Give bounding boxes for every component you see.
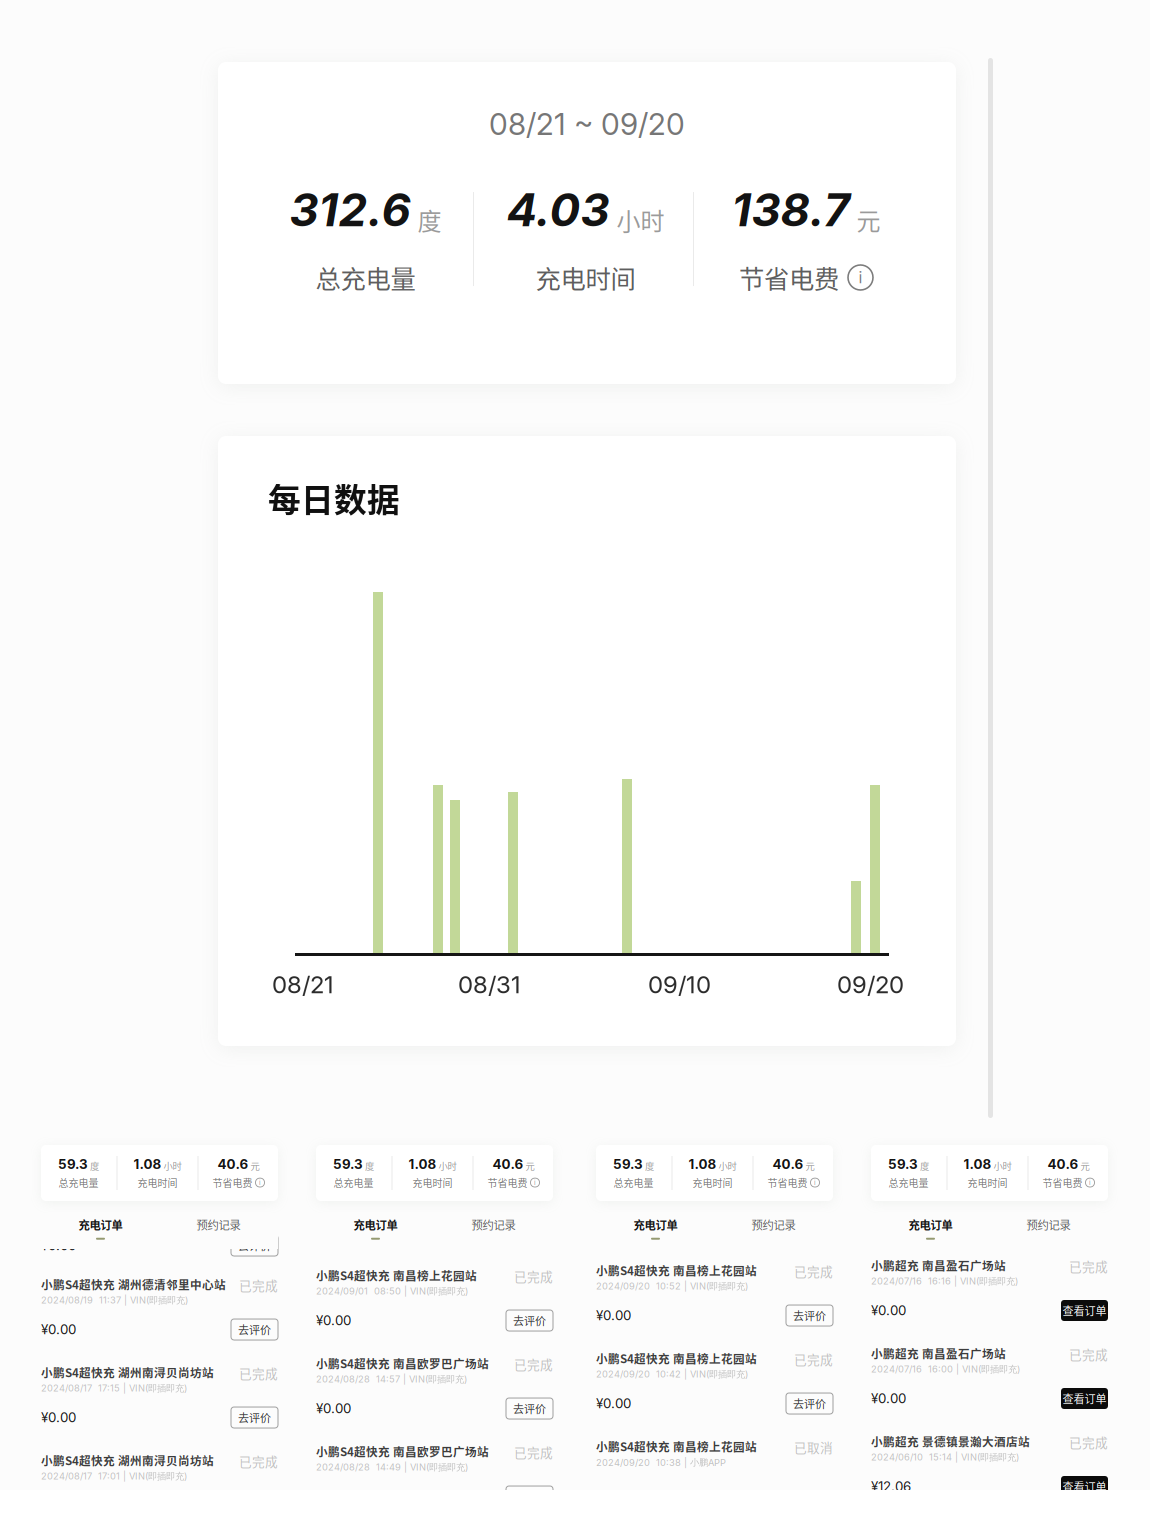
- button[interactable]: 小鹏超充 南昌盈石广场站: [871, 1257, 1108, 1321]
- staticText: 查看订单: [1062, 1302, 1106, 1318]
- button[interactable]: 小鹏S4超快充 湖州德清邻里中心站: [41, 1276, 278, 1340]
- button[interactable]: 去评价: [231, 1235, 278, 1256]
- button[interactable]: 预约记录: [434, 1215, 552, 1241]
- staticText: 已完成: [239, 1276, 278, 1294]
- staticText: 预约记录: [196, 1216, 240, 1233]
- button[interactable]: 去评价: [786, 1305, 833, 1326]
- staticText: ¥12.06: [871, 1478, 911, 1494]
- staticText: 2024/09/20 10:42 | VIN(即插即充): [596, 1368, 748, 1380]
- button[interactable]: 小鹏S4超快充 南昌欧罗巴广场站: [316, 1355, 553, 1419]
- staticText: 59.3: [888, 1156, 918, 1172]
- staticText: ¥0.00: [596, 1307, 631, 1323]
- button[interactable]: 小鹏S4超快充 南昌榜上花园站: [596, 1350, 833, 1414]
- staticText: 总充电量: [888, 1175, 928, 1190]
- staticText: 去评价: [238, 1321, 271, 1337]
- button[interactable]: 去评价: [786, 1393, 833, 1414]
- staticText: 元: [525, 1159, 534, 1172]
- staticText: ¥0.00: [41, 1237, 76, 1253]
- staticText: 去评价: [793, 1307, 826, 1323]
- button[interactable]: 充电订单: [316, 1215, 434, 1241]
- staticText: 小鹏S4超快充 湖州南浔贝尚坊站: [41, 1452, 214, 1468]
- staticText: 138.7: [731, 182, 849, 237]
- staticText: ¥0.00: [316, 1400, 351, 1416]
- button[interactable]: 查看订单: [1061, 1476, 1108, 1497]
- staticText: 小鹏S4超快充 南昌榜上花园站: [596, 1262, 757, 1278]
- staticText: 1.08: [133, 1156, 161, 1172]
- staticText: 小鹏S4超快充 湖州德清邻里中心站: [41, 1276, 226, 1292]
- staticText: 充电订单: [78, 1216, 122, 1233]
- staticText: i: [259, 1178, 261, 1187]
- staticText: i: [1089, 1178, 1091, 1187]
- staticText: 去评价: [513, 1400, 546, 1416]
- button[interactable]: 预约记录: [989, 1215, 1107, 1241]
- staticText: ¥0.00: [41, 1321, 76, 1337]
- button[interactable]: 去评价: [506, 1486, 553, 1507]
- staticText: 08/21: [272, 970, 334, 999]
- staticText: ¥0.00: [596, 1395, 631, 1411]
- button[interactable]: 预约记录: [159, 1215, 277, 1241]
- staticText: 2024/09/20 10:52 | VIN(即插即充): [596, 1280, 748, 1292]
- button[interactable]: 小鹏S4超快充 湖州南浔贝尚坊站: [41, 1452, 278, 1516]
- staticText: 元: [805, 1159, 814, 1172]
- button[interactable]: 去评价: [231, 1407, 278, 1428]
- button[interactable]: 充电订单: [596, 1215, 714, 1241]
- staticText: 节省电费: [212, 1175, 252, 1190]
- staticText: 度: [920, 1159, 929, 1172]
- staticText: 元: [856, 202, 880, 237]
- staticText: 充电时间: [535, 259, 635, 296]
- staticText: 节省电费: [739, 259, 839, 296]
- staticText: 2024/07/16 16:16 | VIN(即插即充): [871, 1275, 1018, 1287]
- staticText: 小鹏S4超快充 南昌榜上花园站: [596, 1350, 757, 1366]
- staticText: 小鹏S4超快充 南昌榜上花园站: [316, 1267, 477, 1283]
- button[interactable]: 小鹏S4超快充 南昌欧罗巴广场站: [316, 1443, 553, 1507]
- staticText: 59.3: [58, 1156, 88, 1172]
- staticText: 充电订单: [353, 1216, 397, 1233]
- staticText: 充电时间: [137, 1175, 177, 1190]
- button[interactable]: 去评价: [231, 1319, 278, 1340]
- button[interactable]: 小鹏S4超快充 南昌榜上花园站: [596, 1262, 833, 1326]
- button[interactable]: 查看订单: [1061, 1300, 1108, 1321]
- staticText: 已完成: [1069, 1433, 1108, 1451]
- button[interactable]: 充电订单: [871, 1215, 989, 1241]
- staticText: 预约记录: [751, 1216, 795, 1233]
- button[interactable]: 小鹏超充 南昌盈石广场站: [871, 1345, 1108, 1409]
- staticText: 充电时间: [412, 1175, 452, 1190]
- staticText: 度: [645, 1159, 654, 1172]
- staticText: 每日数据: [268, 474, 400, 521]
- staticText: 08/21 ~ 09/20: [489, 106, 685, 142]
- staticText: 小时: [993, 1159, 1011, 1172]
- button[interactable]: 去评价: [506, 1398, 553, 1419]
- staticText: 59.3: [613, 1156, 643, 1172]
- staticText: 2024/08/17 17:01 | VIN(即插即充): [41, 1470, 187, 1482]
- staticText: 2024/09/01 08:50 | VIN(即插即充): [316, 1285, 468, 1297]
- staticText: 1.08: [963, 1156, 991, 1172]
- button[interactable]: 预约记录: [714, 1215, 832, 1241]
- staticText: 总充电量: [315, 259, 415, 296]
- staticText: i: [814, 1178, 816, 1187]
- staticText: 2024/08/17 17:15 | VIN(即插即充): [41, 1382, 187, 1394]
- staticText: 去评价: [238, 1237, 271, 1253]
- staticText: 预约记录: [471, 1216, 515, 1233]
- staticText: 小时: [438, 1159, 456, 1172]
- staticText: 09/20: [837, 970, 904, 999]
- staticText: 08/31: [458, 970, 521, 999]
- button[interactable]: 小鹏S4超快充 湖州南浔贝尚坊站: [41, 1364, 278, 1428]
- button[interactable]: 小鹏超充 景德镇景瀚大酒店站: [871, 1433, 1108, 1497]
- staticText: 预约记录: [1026, 1216, 1070, 1233]
- button[interactable]: 查看订单: [1061, 1388, 1108, 1409]
- button[interactable]: 小鹏S4超快充 南昌榜上花园站: [316, 1267, 553, 1331]
- button[interactable]: 小鹏S4超快充 南昌榜上花园站: [596, 1438, 833, 1468]
- staticText: 度: [90, 1159, 99, 1172]
- staticText: 节省电费: [767, 1175, 807, 1190]
- staticText: 节省电费: [1042, 1175, 1082, 1190]
- button[interactable]: 去评价: [506, 1310, 553, 1331]
- staticText: 查看订单: [1062, 1478, 1106, 1494]
- staticText: 2024/09/20 10:38 | 小鹏APP: [596, 1456, 726, 1468]
- staticText: i: [534, 1178, 536, 1187]
- button[interactable]: 充电订单: [41, 1215, 159, 1241]
- staticText: i: [858, 268, 862, 287]
- staticText: 度: [365, 1159, 374, 1172]
- staticText: 40.6: [1047, 1156, 1078, 1172]
